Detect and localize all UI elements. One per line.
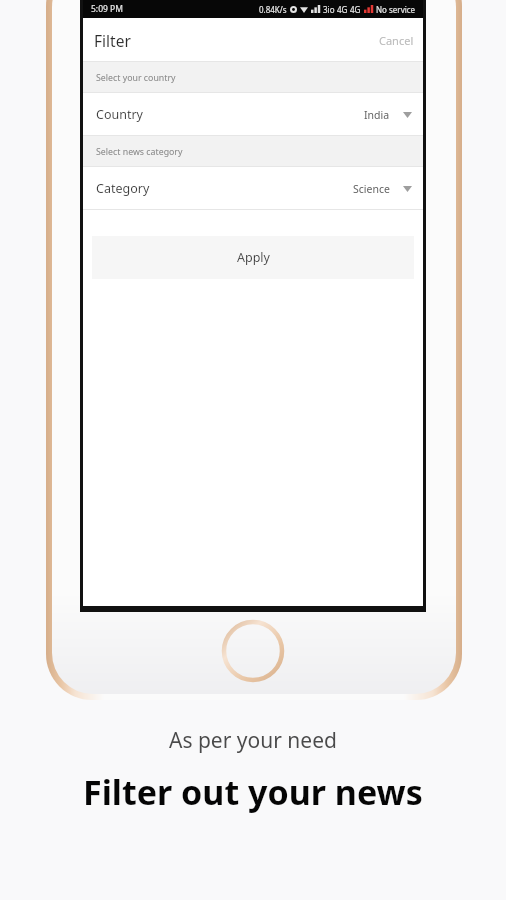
staticText: Cancel — [379, 33, 414, 48]
button[interactable]: Apply — [92, 236, 414, 279]
staticText: 4G — [350, 4, 361, 15]
staticText: India — [364, 108, 390, 122]
staticText: Category — [96, 180, 150, 197]
staticText: Select news category — [96, 146, 183, 158]
button[interactable]: Category — [83, 167, 423, 210]
button[interactable]: Home — [221, 619, 285, 683]
staticText: No service — [376, 4, 416, 15]
staticText: Filter out your news — [83, 769, 423, 815]
staticText: 3io — [323, 4, 335, 15]
button[interactable]: Cancel — [379, 33, 414, 48]
staticText: As per your need — [169, 726, 337, 755]
staticText: Apply — [237, 249, 270, 266]
staticText: 4G — [337, 4, 348, 15]
button[interactable]: Filter — [94, 30, 131, 51]
staticText: Filter — [94, 30, 131, 51]
staticText: 5:09 PM — [91, 3, 123, 15]
staticText: Select your country — [96, 72, 176, 84]
staticText: Science — [353, 182, 390, 196]
staticText: 0.84K/s — [259, 4, 287, 15]
button[interactable]: Country — [83, 93, 423, 136]
staticText: Country — [96, 106, 143, 123]
